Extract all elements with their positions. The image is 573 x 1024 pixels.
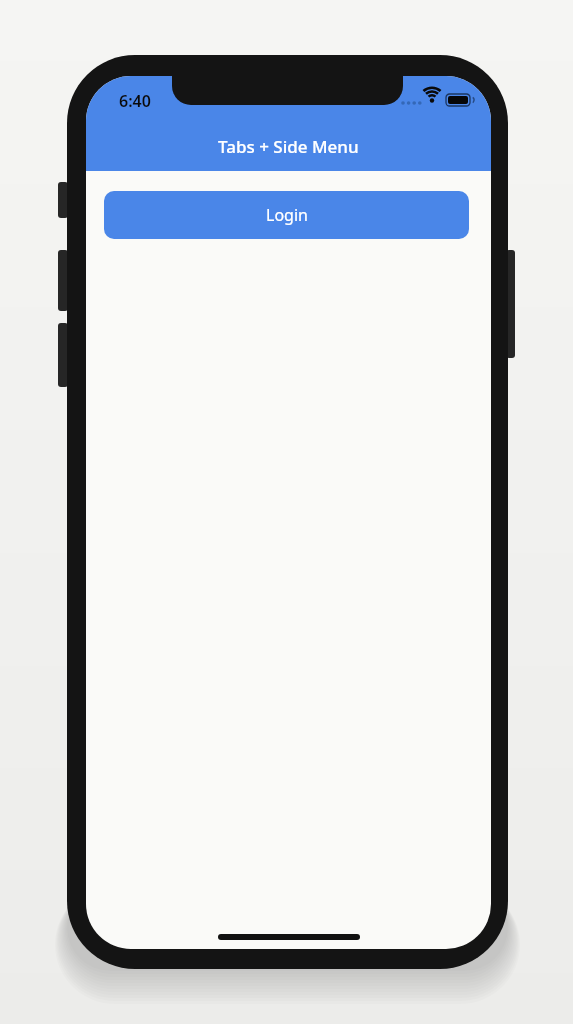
- staticText: Login: [266, 204, 308, 226]
- staticText: Tabs + Side Menu: [218, 135, 359, 158]
- staticText: 6:40: [119, 90, 151, 112]
- button[interactable]: Login: [104, 191, 469, 239]
